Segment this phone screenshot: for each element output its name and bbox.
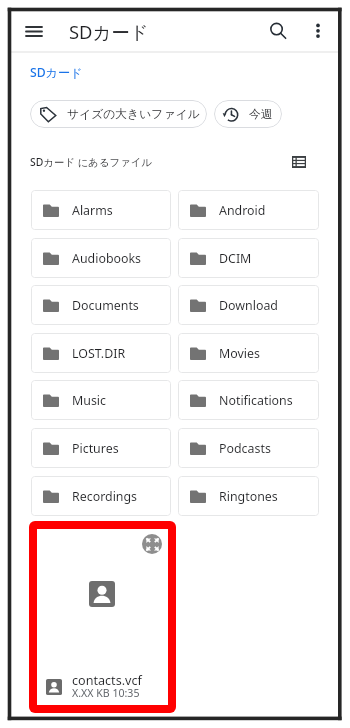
staticText: Alarms xyxy=(72,202,113,219)
button[interactable]: Movies xyxy=(178,333,319,373)
button[interactable]: Download xyxy=(178,285,319,325)
staticText: contacts.vcf xyxy=(72,672,142,689)
button[interactable]: Podcasts xyxy=(178,428,319,468)
staticText: Podcasts xyxy=(219,440,271,457)
staticText: Documents xyxy=(72,297,139,314)
staticText: SDカード xyxy=(69,19,149,44)
staticText: X.XX KB 10:35 xyxy=(72,686,140,700)
button[interactable]: Notifications xyxy=(178,380,319,420)
button[interactable]: Change view xyxy=(288,151,310,173)
button[interactable]: Documents xyxy=(31,285,171,325)
button[interactable]: DCIM xyxy=(178,238,319,278)
staticText: Download xyxy=(219,297,278,314)
staticText: SDカード にあるファイル xyxy=(30,155,153,169)
staticText: Recordings xyxy=(72,488,138,505)
button[interactable]: LOST.DIR xyxy=(31,333,171,373)
button[interactable]: SDカード xyxy=(30,64,83,81)
button[interactable]: Search xyxy=(261,14,295,48)
button[interactable]: Android xyxy=(178,190,319,230)
button[interactable]: Pictures xyxy=(31,428,171,468)
staticText: Notifications xyxy=(219,392,293,409)
staticText: Ringtones xyxy=(219,488,278,505)
button[interactable]: Recordings xyxy=(31,476,171,516)
staticText: Android xyxy=(219,202,266,219)
button[interactable]: Music xyxy=(31,380,171,420)
staticText: Music xyxy=(72,392,106,409)
button[interactable]: サイズの大きいファイル xyxy=(30,100,207,128)
button[interactable]: Audiobooks xyxy=(31,238,171,278)
button[interactable]: More options xyxy=(303,16,333,46)
staticText: LOST.DIR xyxy=(72,345,126,362)
staticText: Pictures xyxy=(72,440,119,457)
button[interactable]: Alarms xyxy=(31,190,171,230)
staticText: 今週 xyxy=(249,107,273,122)
button[interactable]: 今週 xyxy=(214,100,282,128)
staticText: サイズの大きいファイル xyxy=(67,107,200,122)
staticText: Audiobooks xyxy=(72,250,142,267)
button[interactable]: Ringtones xyxy=(178,476,319,516)
button[interactable]: Menu xyxy=(18,15,50,47)
button[interactable]: Expand preview xyxy=(142,534,162,554)
staticText: Movies xyxy=(219,345,260,362)
button[interactable]: Expand preview xyxy=(37,529,168,705)
staticText: DCIM xyxy=(219,250,252,267)
